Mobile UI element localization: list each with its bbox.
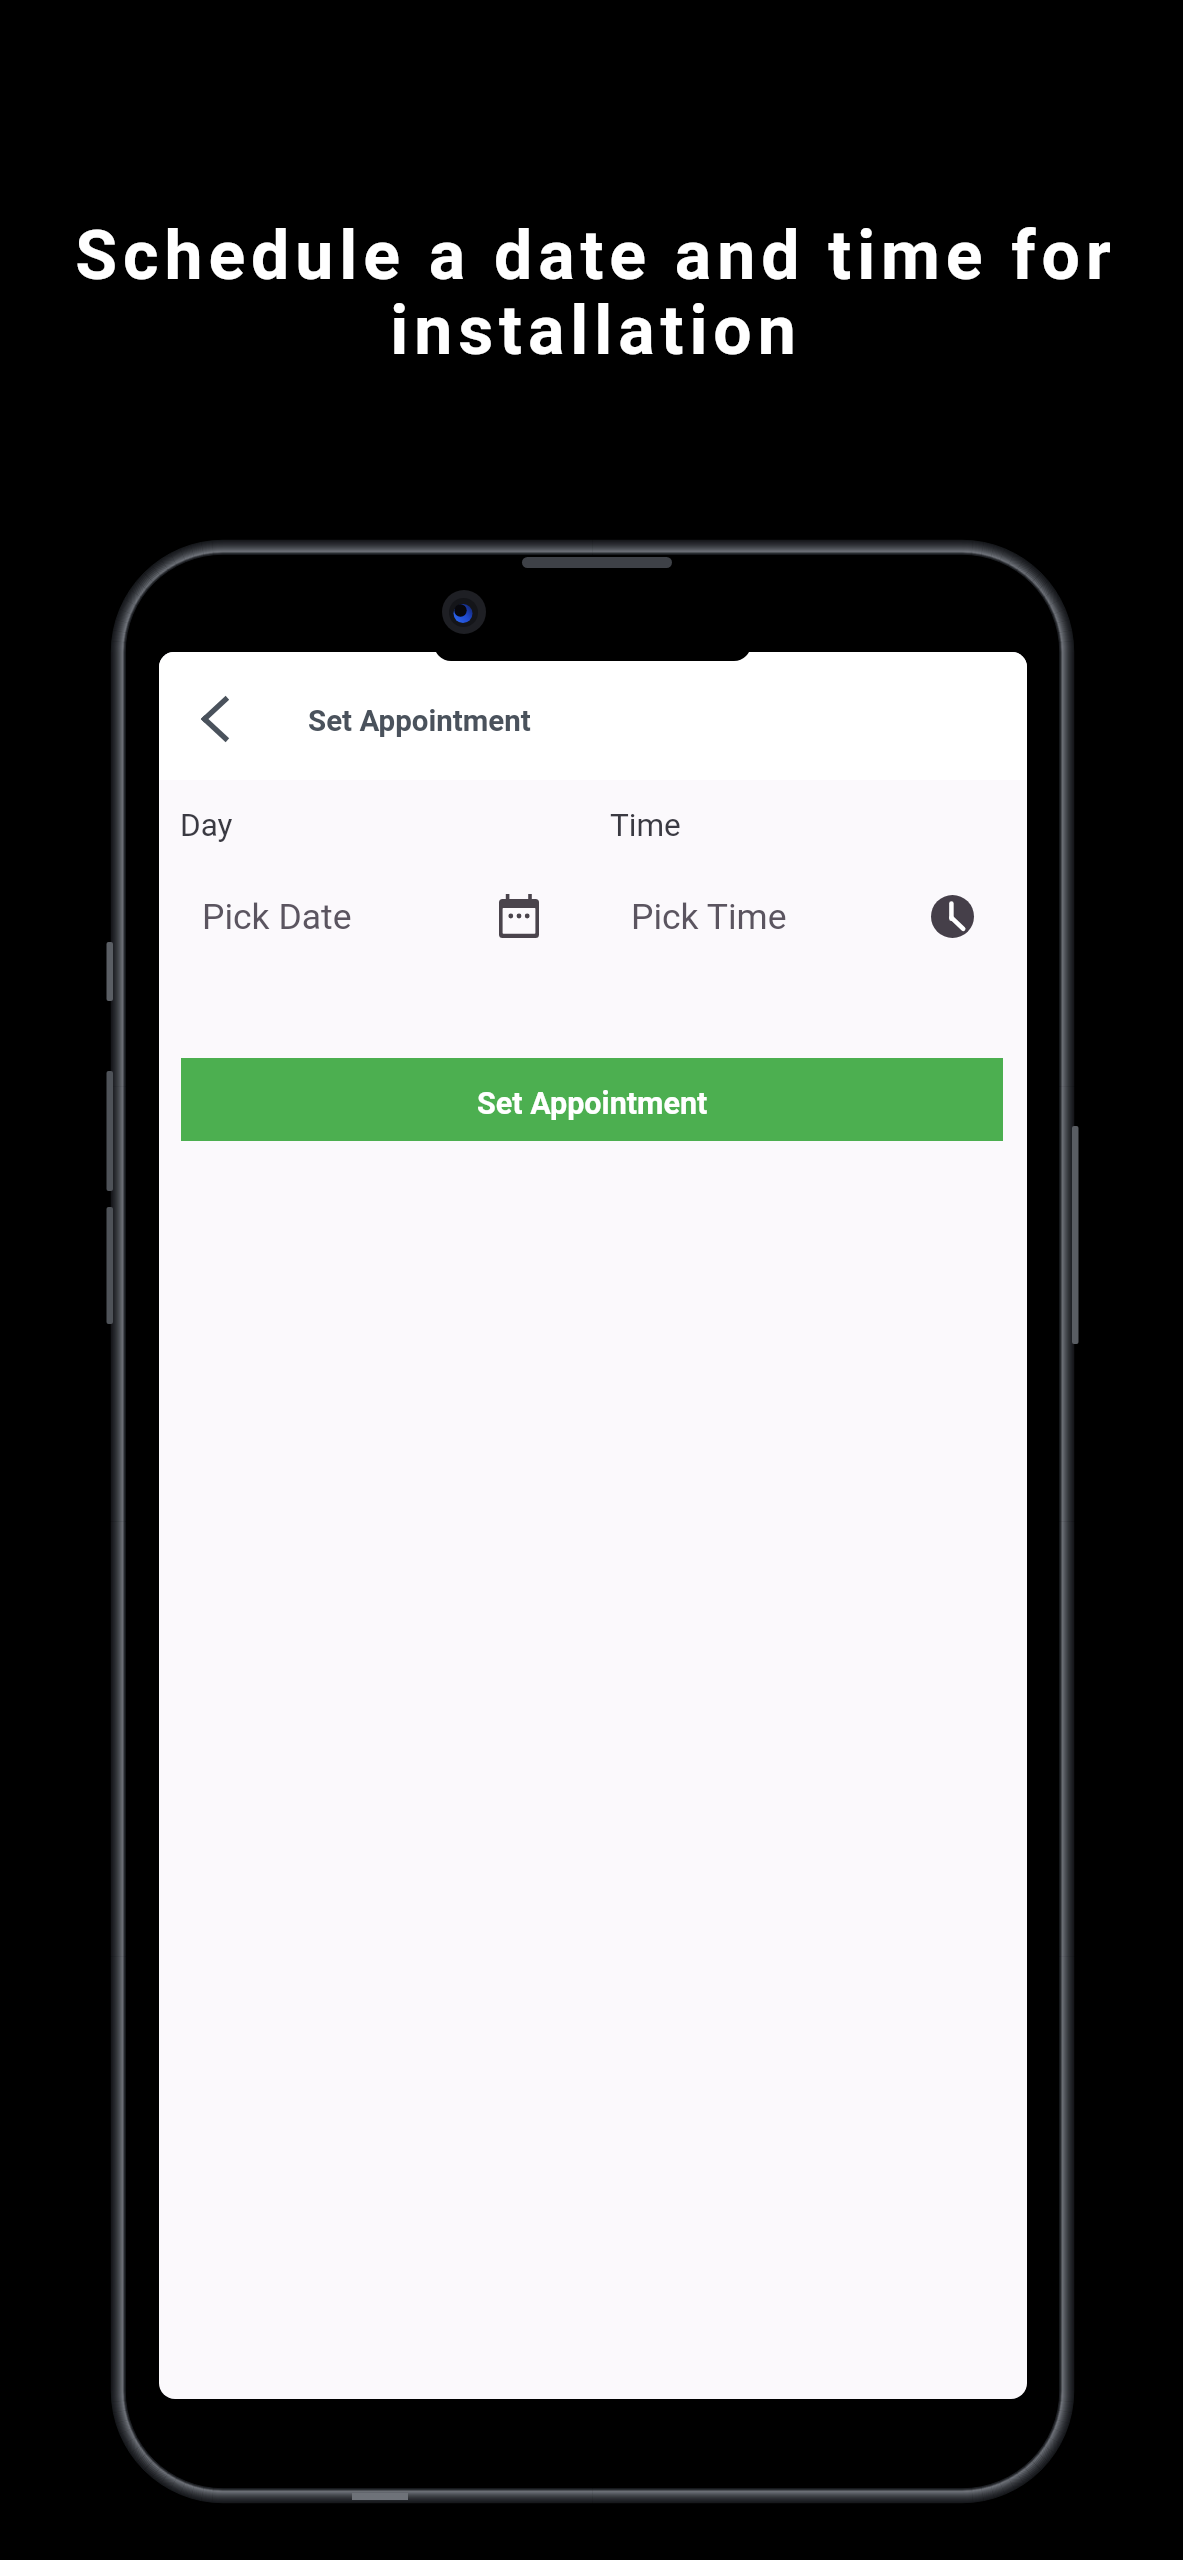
- staticText: Set Appointment: [308, 704, 531, 739]
- button[interactable]: Pick Time: [614, 878, 1027, 954]
- button[interactable]: Pick Date: [183, 878, 603, 954]
- staticText: Pick Time: [631, 896, 787, 938]
- staticText: Pick Date: [202, 896, 352, 938]
- button[interactable]: Back: [182, 686, 247, 751]
- staticText: Day: [180, 807, 233, 844]
- staticText: Schedule a date and time for installatio…: [75, 216, 1117, 371]
- button[interactable]: Set Appointment: [181, 1058, 1003, 1141]
- staticText: Set Appointment: [477, 1086, 708, 1122]
- staticText: Time: [610, 807, 681, 844]
